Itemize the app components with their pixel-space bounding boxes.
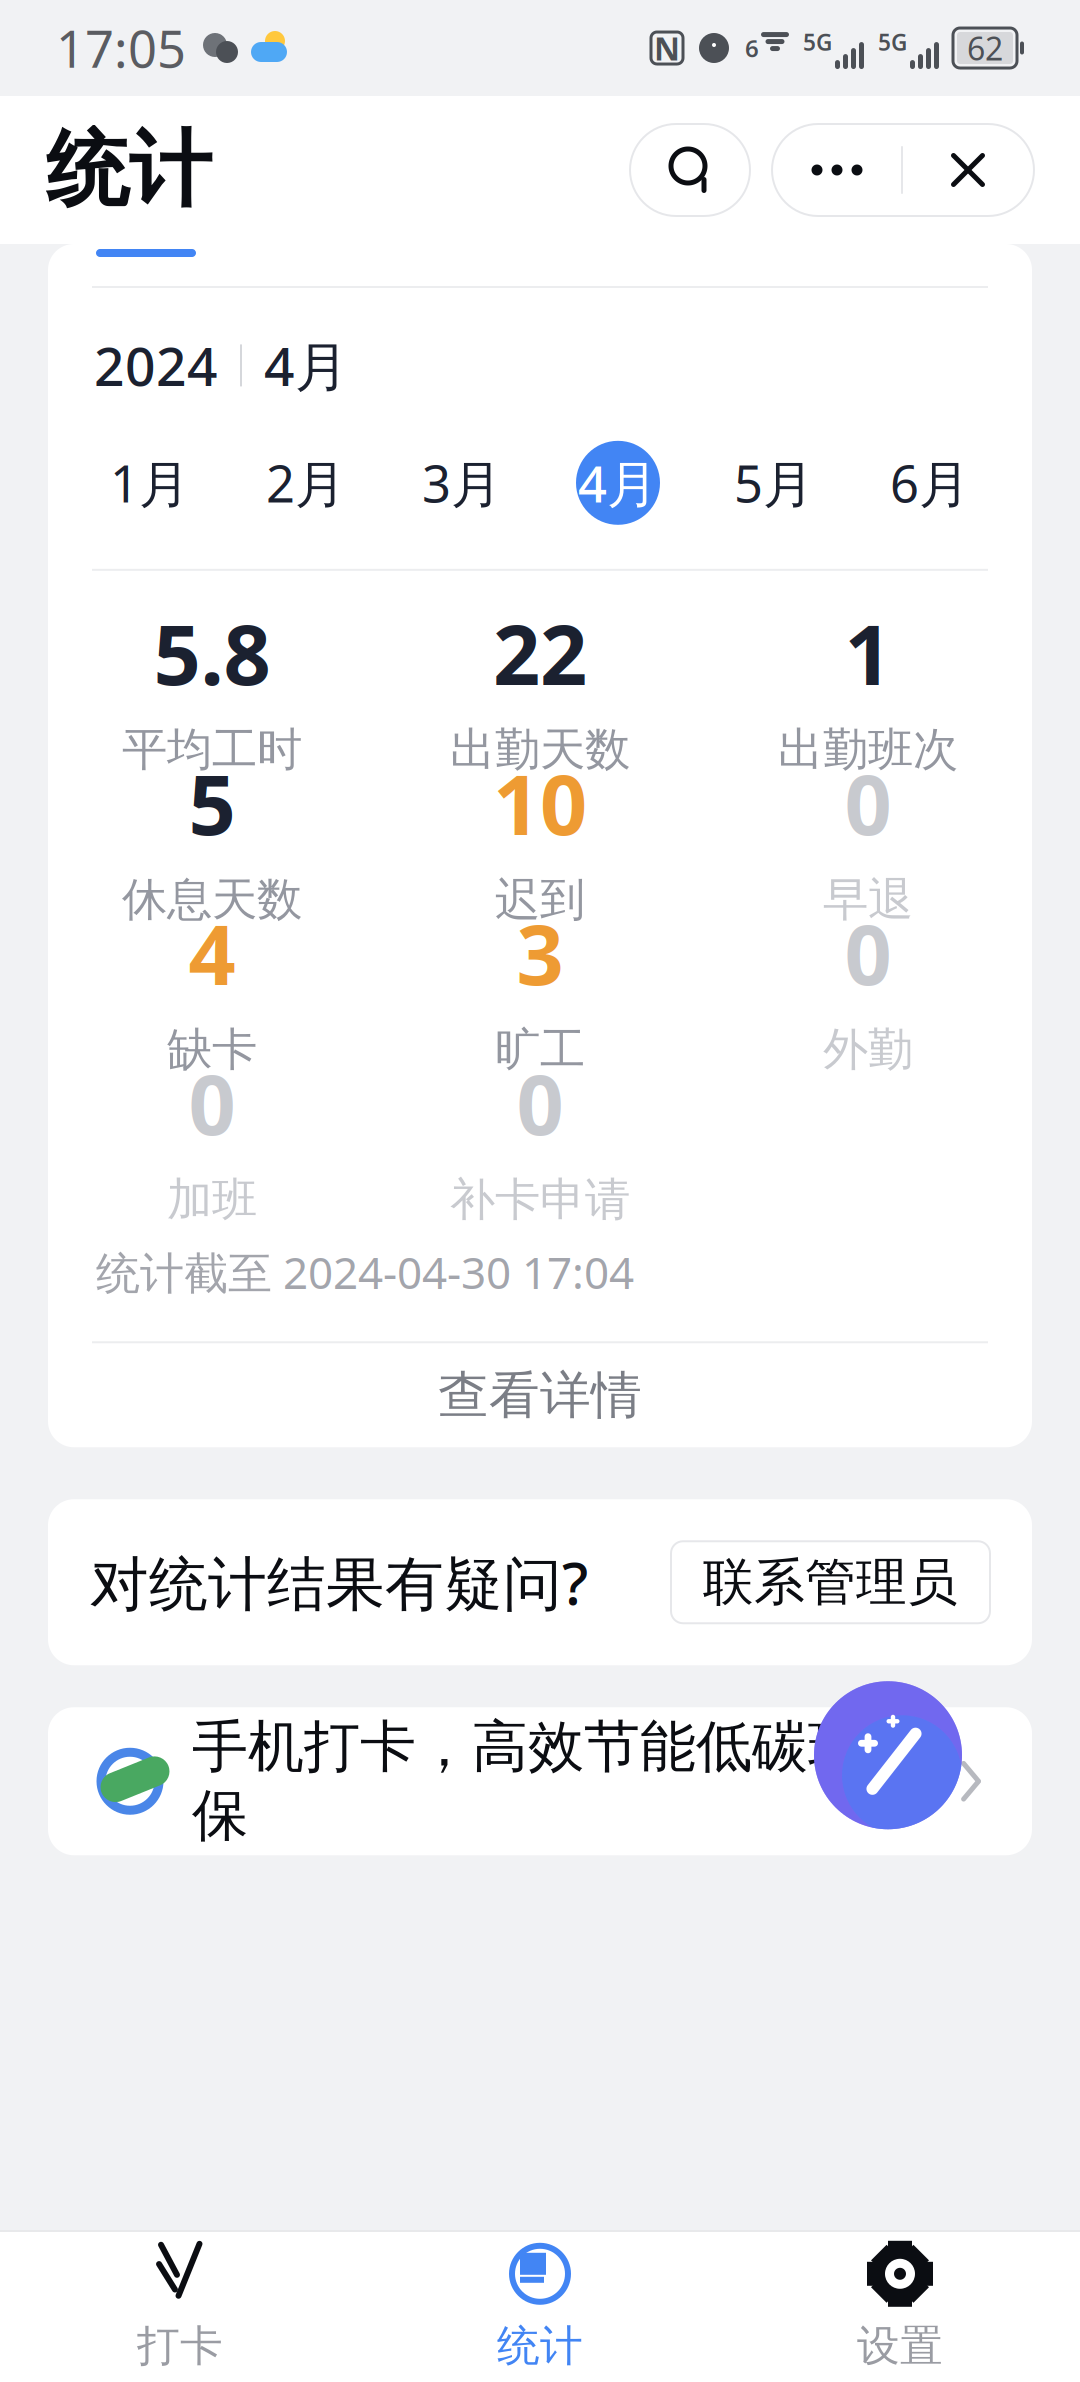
staticText: 6月	[890, 449, 970, 516]
staticText: 早退	[823, 872, 913, 928]
staticText: 打卡	[137, 2320, 223, 2372]
staticText: 出勤天数	[450, 722, 630, 778]
button[interactable]: 1	[704, 613, 1032, 763]
staticText: 17:05	[56, 14, 186, 82]
staticText: 加班	[167, 1172, 257, 1228]
staticText: 设置	[857, 2320, 943, 2372]
button[interactable]: 2月	[228, 437, 384, 529]
staticText: 手机打卡，高效节能低碳环保	[192, 1712, 864, 1850]
button[interactable]: 0	[376, 1063, 704, 1213]
button[interactable]: 联系管理员	[671, 1541, 990, 1623]
button[interactable]: 22	[376, 613, 704, 763]
staticText: 查看详情	[438, 1364, 642, 1426]
staticText: 2024	[94, 330, 218, 401]
staticText: 22	[493, 598, 587, 708]
staticText: 统计	[497, 2320, 583, 2372]
button[interactable]: 3	[376, 913, 704, 1063]
button[interactable]: 1月	[72, 437, 228, 529]
button[interactable]: 5	[48, 763, 376, 913]
staticText: 出勤班次	[778, 722, 958, 778]
button[interactable]: 0	[704, 763, 1032, 913]
button[interactable]: 0	[704, 913, 1032, 1063]
staticText: 平均工时	[122, 722, 302, 778]
button[interactable]: 3月	[384, 437, 540, 529]
staticText: 休息天数	[122, 872, 302, 928]
button[interactable]: 10	[376, 763, 704, 913]
button[interactable]: 5.8	[48, 613, 376, 763]
staticText: 62	[967, 27, 1003, 69]
staticText: 0	[188, 1048, 235, 1158]
staticText: 5	[188, 748, 235, 858]
button[interactable]: 6月	[852, 437, 1008, 529]
staticText: 统计	[46, 119, 212, 221]
staticText: 缺卡	[167, 1022, 257, 1078]
button[interactable]: 4月	[540, 437, 696, 529]
staticText: 0	[844, 748, 891, 858]
staticText: 外勤	[823, 1022, 913, 1078]
staticText: 0	[844, 898, 891, 1008]
button[interactable]: 0	[48, 1063, 376, 1213]
staticText: 2月	[266, 449, 346, 516]
button[interactable]: 查看详情	[48, 1343, 1032, 1447]
button[interactable]: 更多与关闭	[772, 124, 1034, 216]
staticText: 对统计结果有疑问?	[90, 1543, 588, 1621]
staticText: 4月	[264, 330, 348, 401]
staticText: 5.8	[153, 598, 270, 708]
button[interactable]: AI 助手	[814, 1681, 962, 1829]
button[interactable]: 4	[48, 913, 376, 1063]
button[interactable]: 打卡	[0, 2232, 360, 2382]
staticText: 5月	[734, 449, 814, 516]
staticText: N	[654, 27, 680, 69]
button[interactable]: 搜索	[630, 124, 750, 216]
staticText: 4月	[578, 449, 658, 516]
staticText: 1月	[110, 449, 190, 516]
staticText: 旷工	[495, 1022, 585, 1078]
staticText: 1	[844, 598, 891, 708]
staticText: 迟到	[495, 872, 585, 928]
staticText: 0	[516, 1048, 563, 1158]
staticText: 补卡申请	[450, 1172, 630, 1228]
button[interactable]: 统计	[360, 2232, 720, 2382]
staticText: 4	[188, 898, 235, 1008]
button[interactable]: 设置	[720, 2232, 1080, 2382]
staticText: 联系管理员	[703, 1551, 958, 1613]
button[interactable]: 5月	[696, 437, 852, 529]
staticText: 统计截至 2024-04-30 17:04	[96, 1243, 634, 1301]
staticText: 3月	[422, 449, 502, 516]
staticText: 10	[493, 748, 587, 858]
staticText: 5G	[803, 27, 832, 57]
button[interactable]: 手机打卡，高效节能低碳环保	[48, 1707, 1032, 1855]
staticText: 3	[516, 898, 563, 1008]
staticText: 6	[745, 32, 759, 64]
staticText: 去	[881, 1750, 932, 1812]
staticText: 5G	[878, 27, 907, 57]
